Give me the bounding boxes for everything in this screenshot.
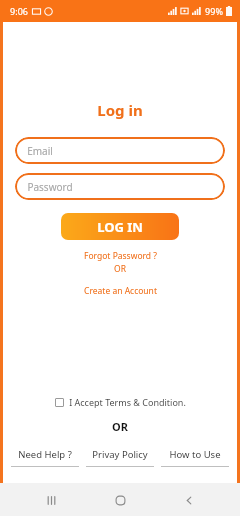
staticText: Log in bbox=[97, 100, 143, 120]
staticText: I Accept Terms & Condition. bbox=[69, 396, 186, 408]
staticText: OR bbox=[112, 419, 128, 434]
staticText: Create an Account bbox=[84, 285, 157, 297]
staticText: 99% bbox=[205, 5, 223, 17]
button[interactable]: Privay Policy bbox=[84, 448, 156, 467]
staticText: Need Help ? bbox=[18, 448, 72, 461]
staticText: OR bbox=[114, 263, 126, 275]
button[interactable]: Home bbox=[107, 487, 133, 513]
button[interactable]: Need Help ? bbox=[9, 448, 81, 467]
button[interactable]: Back bbox=[176, 487, 202, 513]
button[interactable]: Forgot Password ? bbox=[84, 250, 157, 262]
button[interactable]: How to Use bbox=[159, 448, 231, 467]
button[interactable]: Recent apps bbox=[38, 487, 64, 513]
button[interactable]: Create an Account bbox=[84, 285, 157, 297]
button[interactable]: LOG IN bbox=[61, 213, 179, 240]
staticText: Forgot Password ? bbox=[84, 250, 157, 262]
button[interactable]: I Accept Terms & Condition. bbox=[51, 394, 190, 410]
staticText: Privay Policy bbox=[92, 448, 148, 461]
button[interactable]: Password bbox=[15, 173, 225, 200]
staticText: LOG IN bbox=[97, 218, 143, 236]
staticText: How to Use bbox=[169, 448, 221, 461]
button[interactable]: Email bbox=[15, 137, 225, 164]
staticText: 9:06 bbox=[10, 5, 28, 17]
staticText: Password bbox=[27, 180, 73, 194]
staticText: Email bbox=[27, 144, 53, 158]
